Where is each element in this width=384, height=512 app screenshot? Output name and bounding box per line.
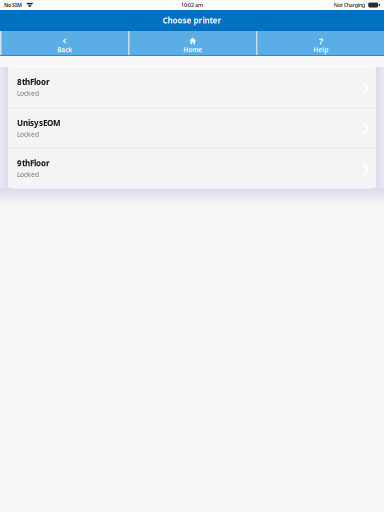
button[interactable]: Home [129, 31, 256, 55]
staticText: Back [57, 45, 72, 54]
staticText: Not Charging [334, 1, 365, 9]
staticText: UnisysEOM [17, 118, 61, 128]
staticText: Locked [17, 89, 39, 97]
staticText: 9thFloor [17, 158, 50, 168]
staticText: Help [313, 45, 328, 54]
staticText: Locked [17, 130, 39, 139]
button[interactable]: UnisysEOM [8, 108, 376, 148]
staticText: Locked [17, 170, 39, 179]
button[interactable]: 9thFloor [8, 148, 376, 189]
staticText: No SIM [4, 1, 22, 9]
button[interactable]: 8thFloor [8, 67, 376, 108]
staticText: 10:02 am [181, 1, 203, 9]
staticText: ? [319, 35, 323, 47]
staticText: Home [183, 45, 202, 54]
button[interactable]: Back [1, 31, 128, 55]
staticText: Choose printer [162, 15, 221, 26]
staticText: 8thFloor [17, 76, 50, 87]
button[interactable]: ? [257, 31, 384, 55]
